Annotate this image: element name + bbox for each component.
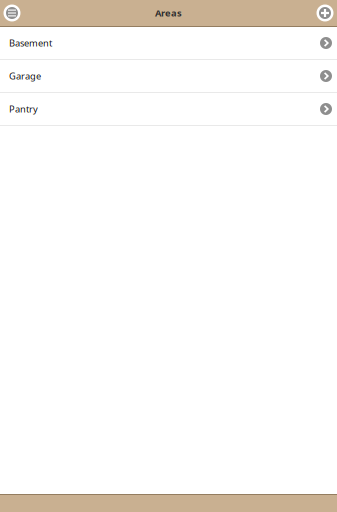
button[interactable]: Garage xyxy=(0,60,337,93)
staticText: Pantry xyxy=(9,103,38,115)
button[interactable]: Pantry xyxy=(0,93,337,126)
staticText: Areas xyxy=(155,7,182,19)
staticText: Garage xyxy=(9,70,41,82)
staticText: Basement xyxy=(9,37,52,49)
button[interactable]: Menu xyxy=(0,1,21,25)
button[interactable]: Add new area xyxy=(316,1,337,25)
button[interactable]: Basement xyxy=(0,27,337,60)
